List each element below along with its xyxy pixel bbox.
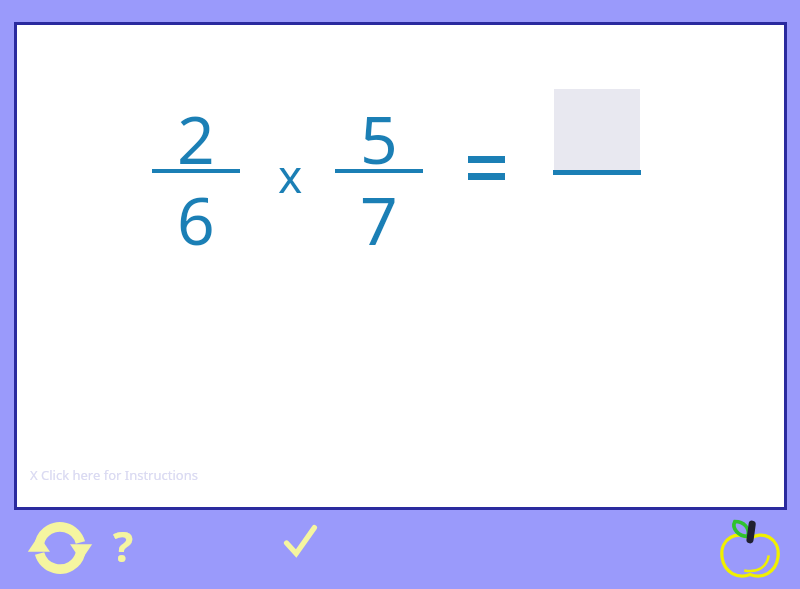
staticText: 6 bbox=[177, 174, 215, 250]
staticText: 7 bbox=[360, 174, 398, 250]
staticText: 2 bbox=[177, 93, 215, 169]
staticText: x bbox=[278, 144, 303, 200]
button[interactable]: Help bbox=[102, 516, 144, 574]
button[interactable]: Numerator answer field bbox=[554, 89, 640, 171]
button[interactable]: Score bbox=[714, 516, 786, 584]
staticText: 5 bbox=[360, 93, 398, 169]
button[interactable]: X Click here for Instructions bbox=[30, 464, 198, 486]
button[interactable]: Check answer bbox=[276, 519, 324, 567]
staticText: ? bbox=[113, 517, 134, 574]
button[interactable]: Restart bbox=[28, 516, 92, 580]
staticText: X Click here for Instructions bbox=[30, 466, 198, 484]
